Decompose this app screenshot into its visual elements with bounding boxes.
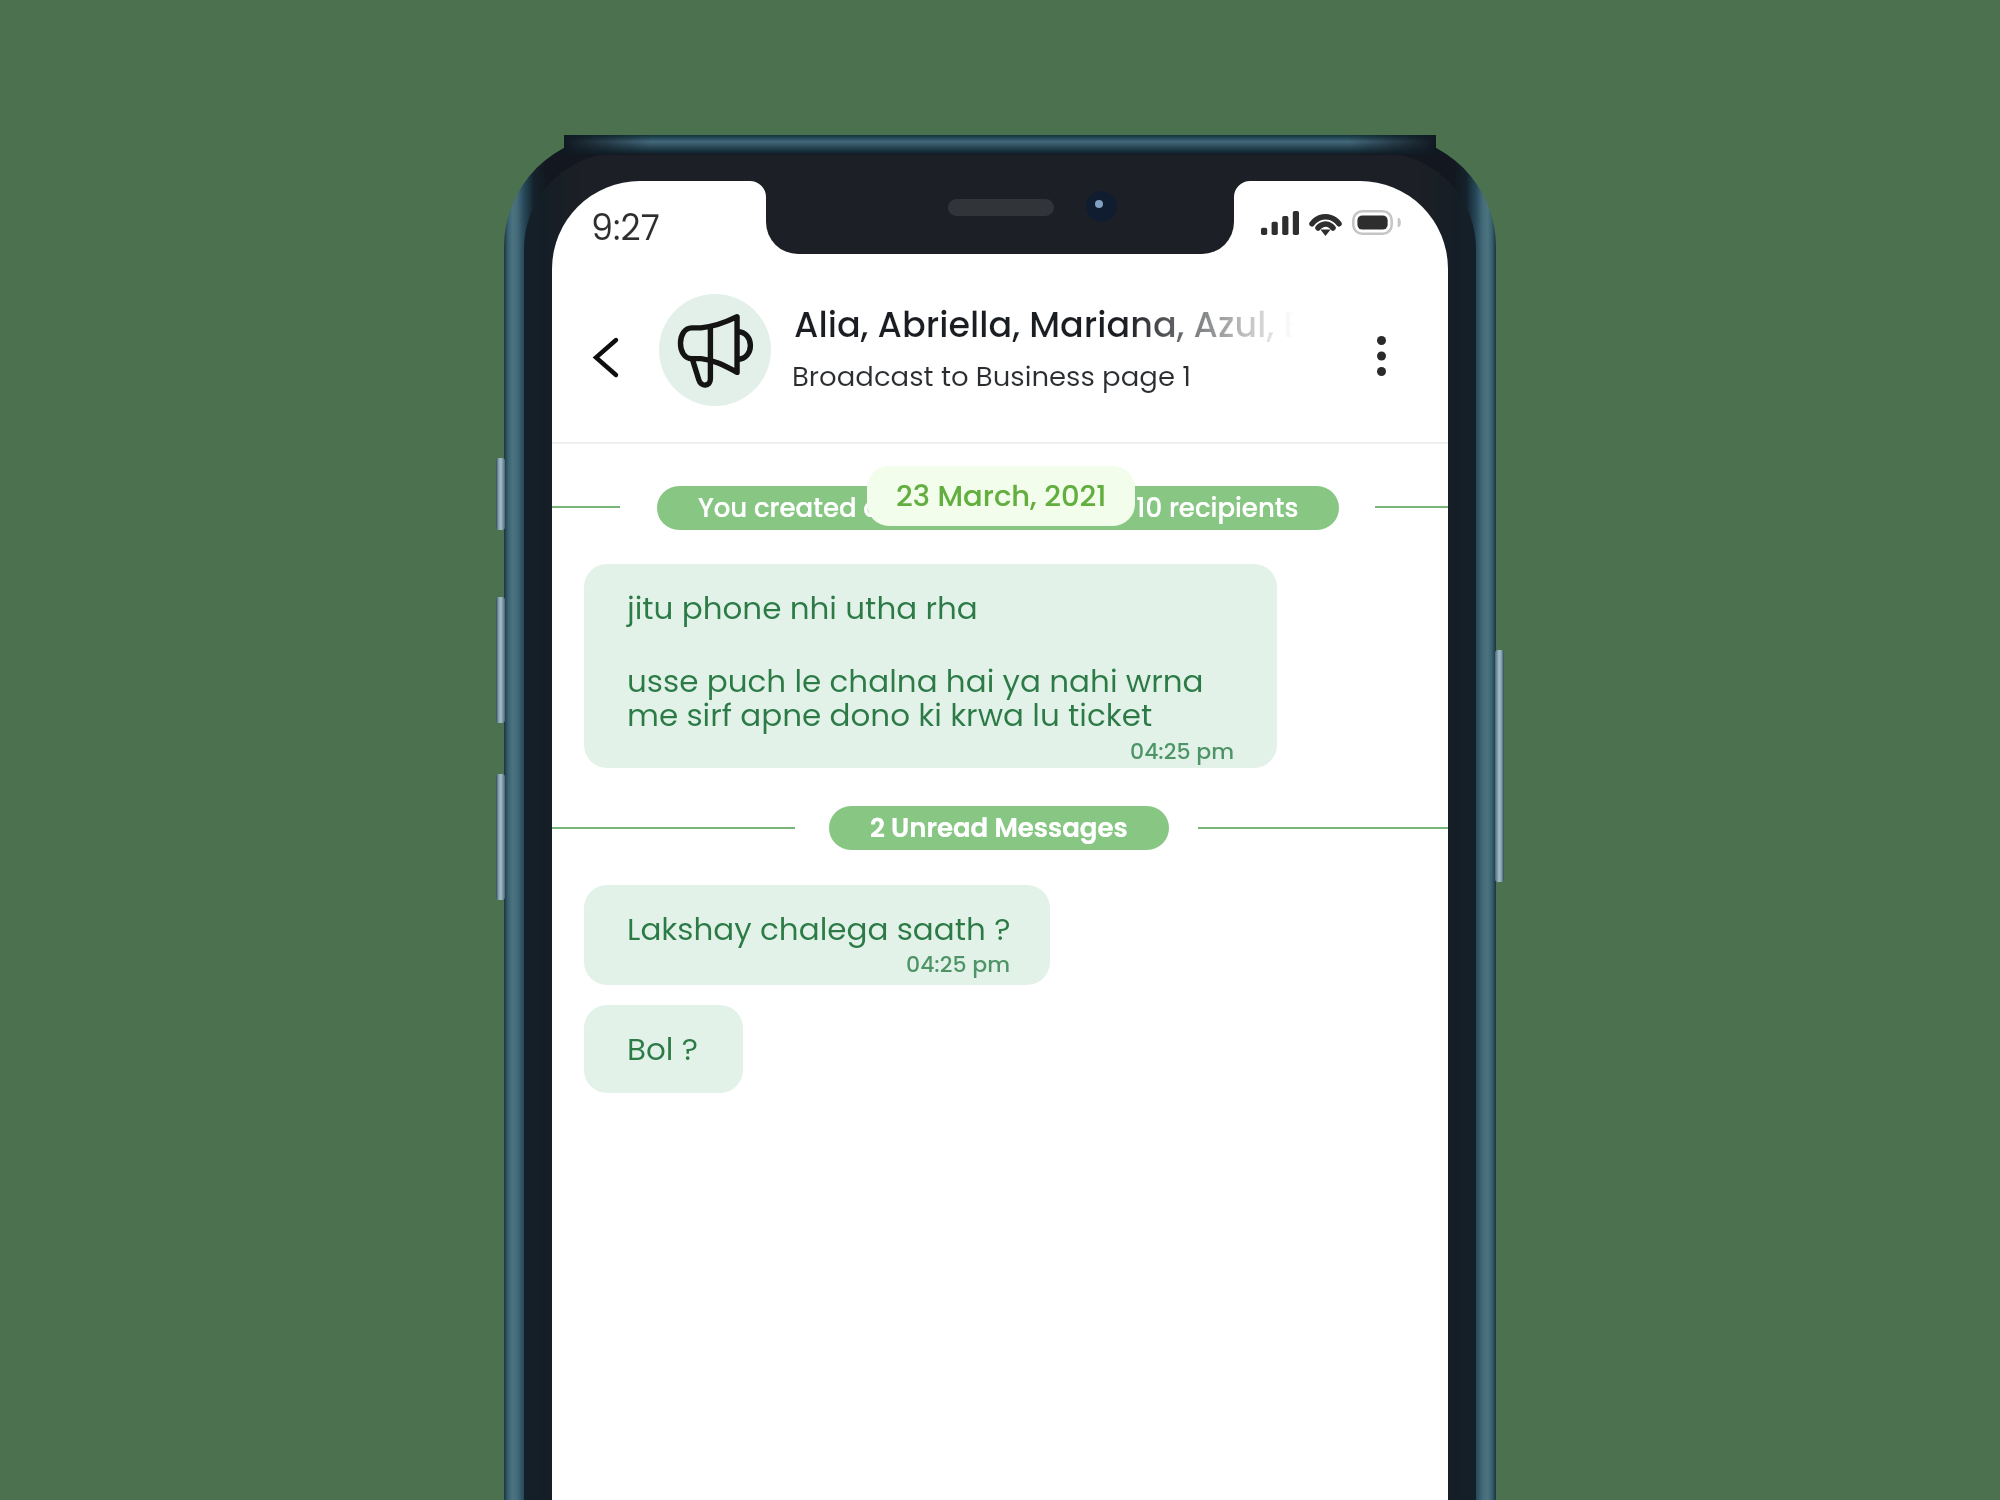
button[interactable]: Back bbox=[566, 317, 646, 397]
staticText: 2 Unread Messages bbox=[870, 810, 1128, 846]
button[interactable]: jitu phone nhi utha rha bbox=[584, 564, 1277, 768]
staticText: usse puch le chalna hai ya nahi wrna me … bbox=[627, 659, 1204, 737]
staticText: 9:27 bbox=[591, 203, 660, 252]
button[interactable]: 2 Unread Messages bbox=[829, 806, 1169, 850]
staticText: 04:25 pm bbox=[764, 949, 1010, 980]
staticText: Alia, Abriella, Mariana, Azul, Ev bbox=[794, 300, 1294, 349]
button[interactable]: More options bbox=[1341, 316, 1421, 396]
button[interactable]: Broadcast list avatar bbox=[659, 294, 771, 406]
staticText: Broadcast to Business page 1 bbox=[792, 357, 1192, 395]
staticText: 23 March, 2021 bbox=[896, 476, 1107, 517]
staticText: You created a broadcast list with 10 rec… bbox=[698, 490, 1299, 526]
button[interactable]: Lakshay chalega saath ? bbox=[584, 885, 1050, 985]
staticText: Lakshay chalega saath ? bbox=[627, 907, 1011, 950]
staticText: Bol ? bbox=[627, 1027, 698, 1070]
button[interactable]: Bol ? bbox=[584, 1005, 743, 1093]
staticText: jitu phone nhi utha rha bbox=[627, 586, 978, 629]
staticText: 04:25 pm bbox=[1004, 736, 1234, 767]
